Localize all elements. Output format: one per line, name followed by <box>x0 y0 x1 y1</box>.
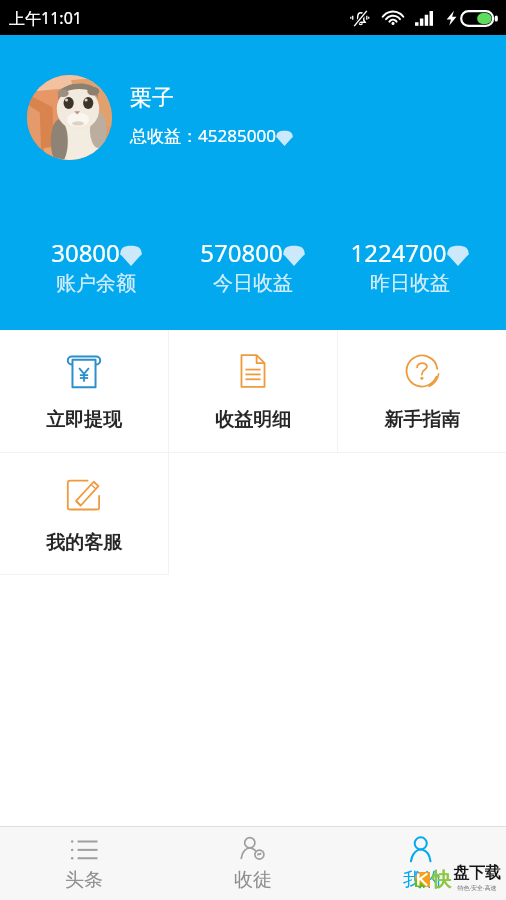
button[interactable]: 收益明细 <box>169 330 337 452</box>
staticText: 收益明细 <box>215 408 291 432</box>
staticText: 收徒 <box>234 868 272 892</box>
button[interactable]: 我的 <box>337 827 506 900</box>
button[interactable]: 立即提现 <box>0 330 168 452</box>
staticText: 快 <box>432 868 451 892</box>
staticText: 总收益：45285000 <box>130 124 276 147</box>
staticText: 立即提现 <box>46 408 122 432</box>
button[interactable]: 头条 <box>0 827 168 900</box>
staticText: 上午11:01 <box>9 7 82 29</box>
staticText: 账户余额 <box>56 271 136 296</box>
staticText: 我的客服 <box>46 531 122 555</box>
staticText: 昨日收益 <box>370 271 450 296</box>
button[interactable]: 我的客服 <box>0 453 168 574</box>
staticText: 今日收益 <box>213 271 293 296</box>
staticText: 盘下载 <box>453 863 501 883</box>
staticText: 特色·安全·高速 <box>457 884 497 892</box>
staticText: 30800 <box>51 236 120 269</box>
staticText: 570800 <box>200 236 283 269</box>
staticText: 1224700 <box>350 236 447 269</box>
button[interactable]: 收徒 <box>168 827 337 900</box>
button[interactable]: 新手指南 <box>338 330 506 452</box>
staticText: 栗子 <box>130 84 174 112</box>
staticText: 新手指南 <box>384 408 460 432</box>
staticText: 头条 <box>65 868 103 892</box>
staticText: 我的 <box>403 868 441 892</box>
